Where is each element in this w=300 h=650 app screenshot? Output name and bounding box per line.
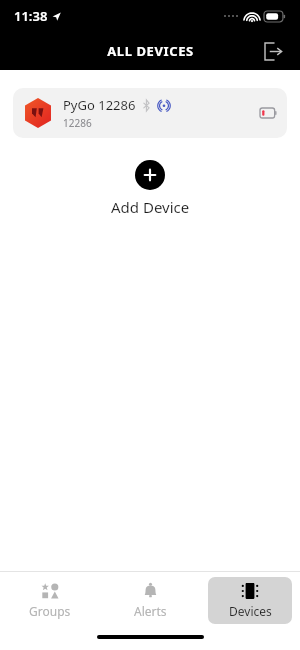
staticText: Groups [29, 603, 71, 619]
button[interactable]: Log out [256, 34, 290, 68]
staticText: Devices [229, 603, 272, 619]
button[interactable]: Devices [208, 577, 292, 624]
button[interactable]: Add Device [0, 160, 300, 217]
staticText: Alerts [134, 603, 167, 619]
staticText: 12286 [63, 116, 92, 130]
button[interactable]: Alerts [108, 577, 192, 624]
staticText: PyGo 12286 [63, 96, 136, 114]
staticText: 11:38 [14, 7, 48, 25]
button[interactable]: Groups [8, 577, 92, 624]
button[interactable]: PyGo 12286 [13, 88, 287, 138]
staticText: ALL DEVICES [107, 42, 194, 60]
staticText: Add Device [111, 197, 190, 217]
